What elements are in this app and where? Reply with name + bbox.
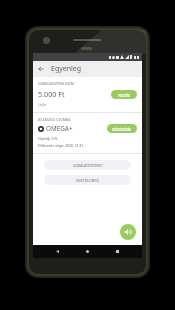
staticText: 5.000 Ft (38, 89, 65, 99)
button[interactable]: FIZETÉSI INFÓ (44, 175, 131, 185)
staticText: Előfizetés vége: 2030.12.31. (38, 143, 85, 148)
button[interactable]: FIZETÉS (111, 90, 137, 99)
button[interactable]: MÓDOSÍTÁS (107, 124, 137, 133)
staticText: SZÁMLATÖRTÉNET (73, 163, 103, 168)
staticText: Egyenleg (51, 64, 82, 74)
staticText: Lejár (38, 102, 47, 107)
button[interactable]: Recents (112, 246, 123, 257)
staticText: FIZETÉSI INFÓ (76, 178, 99, 183)
staticText: Havidíj: 0 Ft (38, 136, 58, 141)
staticText: OMEGA+ (46, 124, 73, 133)
staticText: JELENLEGI CSOMAG (38, 117, 71, 122)
button[interactable]: Home (82, 246, 93, 257)
button[interactable]: Voice assistant (120, 224, 136, 240)
staticText: MÓDOSÍTÁS (112, 127, 132, 131)
button[interactable]: Back (35, 63, 47, 75)
staticText: SZÁMLAEGYENLEGEM (38, 81, 75, 86)
button[interactable]: SZÁMLATÖRTÉNET (44, 160, 131, 170)
staticText: FIZETÉS (118, 93, 131, 97)
button[interactable]: Back (52, 246, 63, 257)
